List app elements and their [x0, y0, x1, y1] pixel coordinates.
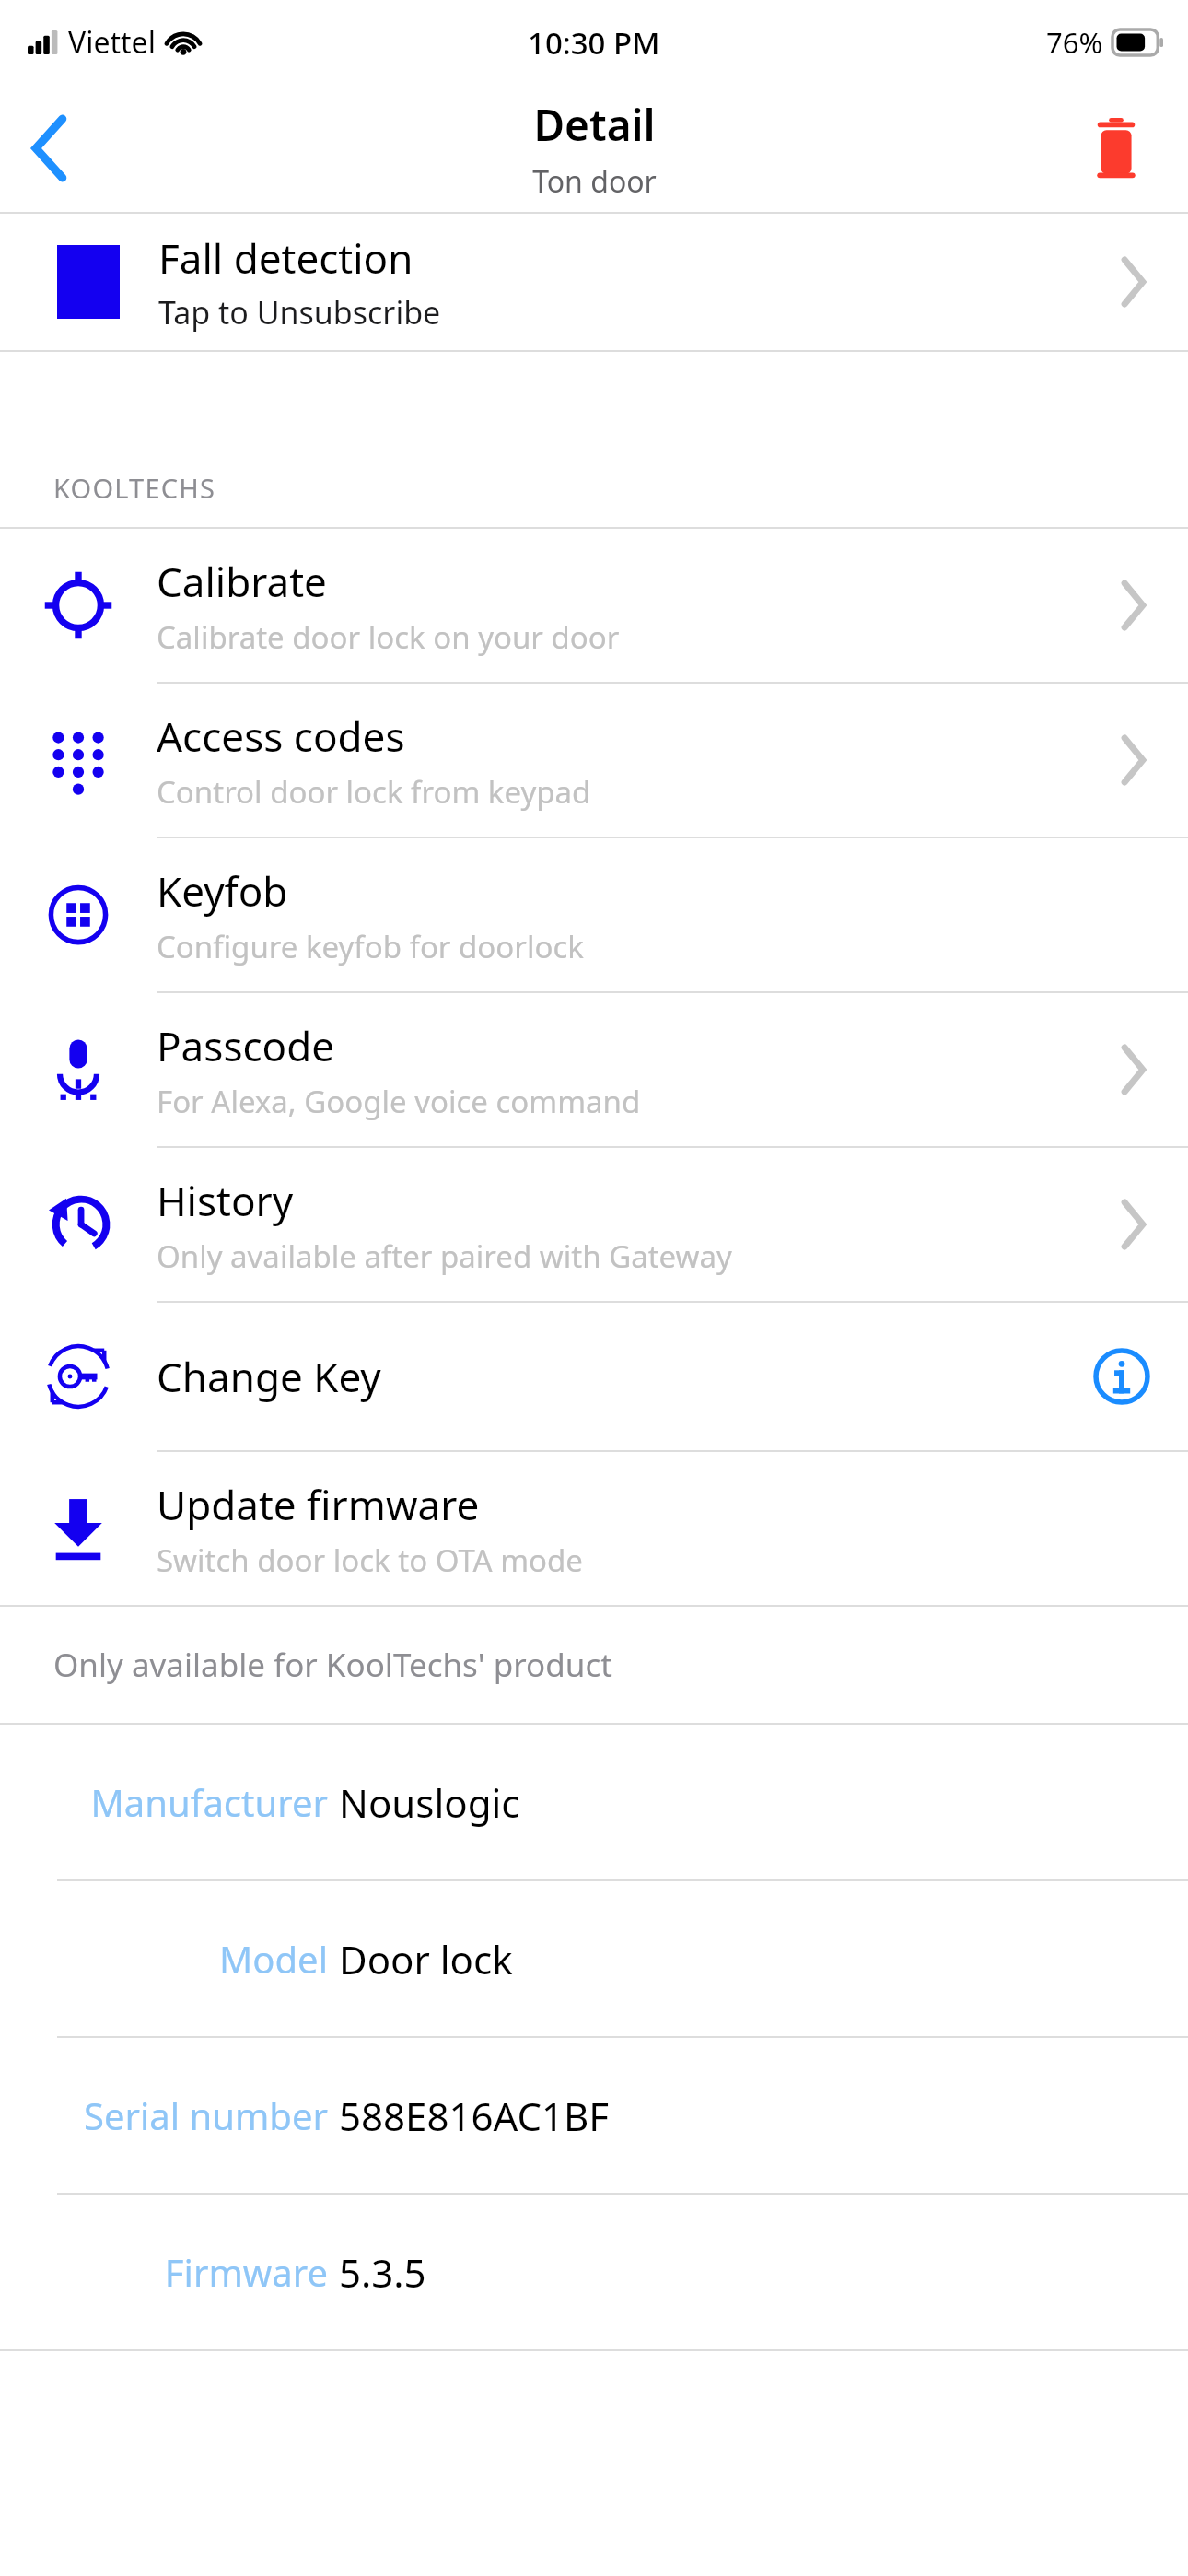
staticText: 10:30 PM	[528, 22, 660, 64]
staticText: Passcode	[157, 1018, 335, 1073]
staticText: Manufacturer	[90, 1777, 328, 1827]
staticText: Access codes	[157, 708, 405, 764]
staticText: Configure keyfob for doorlock	[157, 926, 584, 967]
button[interactable]: Passcode	[0, 993, 1188, 1146]
button[interactable]: History	[0, 1148, 1188, 1301]
button[interactable]: Access codes	[0, 684, 1188, 837]
staticText: 5.3.5	[339, 2246, 426, 2299]
button[interactable]: Firmware	[0, 2195, 1188, 2349]
staticText: Nouslogic	[339, 1776, 520, 1829]
button[interactable]: Manufacturer	[0, 1725, 1188, 1879]
staticText: Firmware	[164, 2247, 328, 2297]
button[interactable]: Calibrate	[0, 529, 1188, 682]
staticText: Change Key	[157, 1349, 1077, 1404]
staticText: Only available after paired with Gateway	[157, 1235, 732, 1277]
staticText: Tap to Unsubscribe	[158, 291, 441, 334]
staticText: Keyfob	[157, 863, 288, 919]
staticText: Calibrate door lock on your door	[157, 616, 620, 658]
button[interactable]: Serial number	[0, 2038, 1188, 2193]
staticText: Door lock	[339, 1933, 513, 1985]
staticText: History	[157, 1173, 294, 1228]
staticText: KOOLTECHS	[53, 470, 216, 506]
staticText: 76%	[1046, 23, 1103, 62]
staticText: Detail	[533, 96, 656, 154]
button[interactable]: Model	[0, 1881, 1188, 2036]
staticText: Serial number	[83, 2090, 328, 2140]
button[interactable]: Fall detection	[0, 214, 1188, 350]
staticText: Control door lock from keypad	[157, 771, 591, 813]
staticText: For Alexa, Google voice command	[157, 1081, 641, 1122]
staticText: Update firmware	[157, 1477, 480, 1532]
staticText: Model	[219, 1934, 328, 1984]
staticText: Calibrate	[157, 554, 327, 609]
button[interactable]: Info	[1077, 1332, 1166, 1421]
staticText: Fall detection	[158, 230, 413, 286]
button[interactable]: Delete	[1072, 98, 1160, 199]
button[interactable]: Change Key	[0, 1303, 1188, 1450]
staticText: Ton door	[532, 161, 657, 202]
button[interactable]: Update firmware	[0, 1452, 1188, 1605]
staticText: 588E816AC1BF	[339, 2090, 610, 2142]
staticText: Switch door lock to OTA mode	[157, 1540, 583, 1581]
button[interactable]: Back	[0, 98, 101, 199]
staticText: Viettel	[68, 22, 156, 63]
button[interactable]: Keyfob	[0, 838, 1188, 991]
staticText: Only available for KoolTechs' product	[53, 1643, 612, 1687]
